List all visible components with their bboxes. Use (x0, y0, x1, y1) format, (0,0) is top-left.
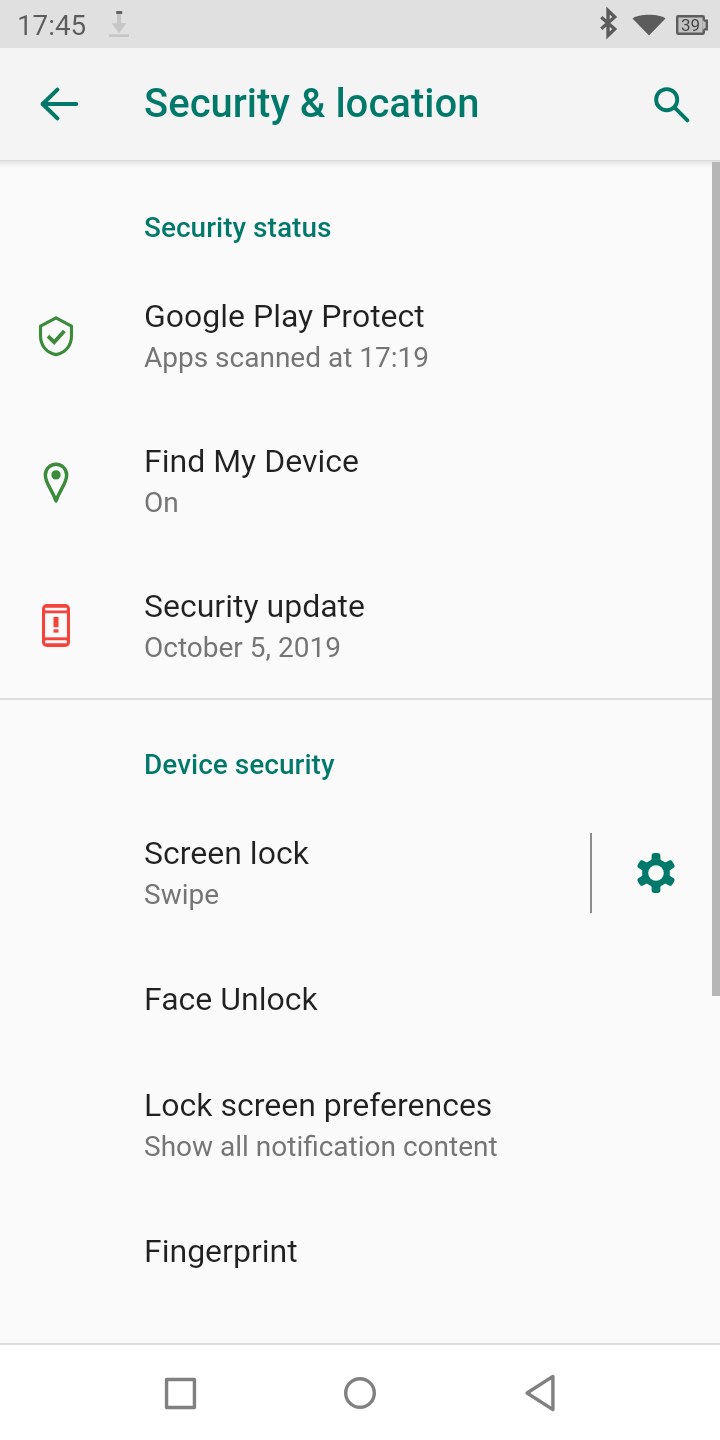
button[interactable]: Recent apps (136, 1349, 224, 1437)
button[interactable]: Home (316, 1349, 404, 1437)
staticText: October 5, 2019 (144, 631, 341, 664)
staticText: Device security (144, 748, 335, 781)
staticText: 17:45 (17, 9, 87, 42)
staticText: Swipe (144, 878, 220, 911)
staticText: Face Unlock (144, 980, 318, 1018)
staticText: Fingerprint (144, 1232, 298, 1270)
button[interactable]: Face Unlock (0, 945, 720, 1052)
staticText: Google Play Protect (144, 297, 425, 335)
button[interactable]: Screen lock settings (592, 801, 720, 945)
staticText: On (144, 486, 179, 519)
staticText: Security update (144, 587, 366, 625)
staticText: Screen lock (144, 834, 309, 872)
staticText: Show all notification content (144, 1130, 498, 1163)
button[interactable]: Google Play Protect (0, 263, 720, 408)
button[interactable]: Search (623, 56, 719, 152)
button[interactable]: Back (496, 1349, 584, 1437)
button[interactable]: Security update (0, 553, 720, 698)
button[interactable]: Fingerprint (0, 1197, 720, 1304)
button[interactable]: Find My Device (0, 408, 720, 553)
staticText: Lock screen preferences (144, 1086, 493, 1124)
staticText: Security status (144, 211, 332, 244)
button[interactable]: Screen lock (0, 800, 720, 945)
button[interactable]: Navigate up (11, 56, 107, 152)
button[interactable]: Lock screen preferences (0, 1052, 720, 1197)
staticText: 39 (681, 15, 701, 35)
staticText: Find My Device (144, 442, 359, 480)
staticText: Apps scanned at 17:19 (144, 341, 430, 374)
staticText: Security & location (144, 80, 480, 127)
